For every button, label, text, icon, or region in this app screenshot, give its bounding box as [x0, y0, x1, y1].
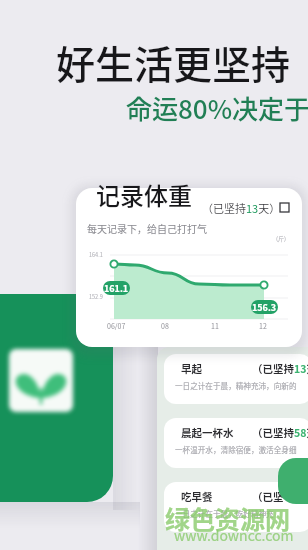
- button[interactable]: 早起: [164, 354, 308, 404]
- staticText: （已坚持58天: [252, 425, 308, 440]
- staticText: 06/07: [107, 321, 126, 331]
- staticText: （已坚持13天）: [202, 200, 281, 216]
- staticText: 一日之计在于晨，精神充沛，向新的: [175, 380, 297, 391]
- other: Check: [280, 203, 289, 212]
- staticText: 绿色资源网: [165, 500, 291, 536]
- staticText: (斤): [276, 234, 287, 243]
- staticText: （已坚持13天: [252, 361, 308, 376]
- staticText: 164.1: [89, 251, 103, 259]
- button[interactable]: Add habit: [278, 458, 308, 504]
- staticText: 一杯温开水，清除宿便，激活全身细: [175, 444, 297, 455]
- staticText: 好生活更坚持: [56, 34, 291, 90]
- staticText: （已坚: [252, 489, 284, 504]
- button[interactable]: 晨起一杯水: [164, 418, 308, 468]
- staticText: 161.1: [104, 282, 129, 295]
- staticText: 晨起一杯水: [181, 425, 234, 440]
- staticText: 12: [259, 321, 267, 331]
- staticText: 每天记录下，给自己打打气: [87, 221, 207, 235]
- button[interactable]: 吃早餐: [164, 482, 308, 532]
- button[interactable]: （已坚持13天）: [76, 188, 302, 347]
- staticText: 152.9: [89, 293, 103, 301]
- staticText: 早起: [181, 361, 202, 376]
- staticText: www.downcc.com: [174, 525, 294, 545]
- staticText: 记录体重: [96, 177, 192, 212]
- staticText: 08: [161, 321, 169, 331]
- staticText: 吃早餐: [181, 489, 213, 504]
- staticText: 11: [211, 321, 219, 331]
- staticText: 一日之计在于晨，吃好精神充: [175, 508, 274, 519]
- staticText: 156.3: [252, 301, 277, 314]
- staticText: 命运80%决定于: [126, 89, 308, 127]
